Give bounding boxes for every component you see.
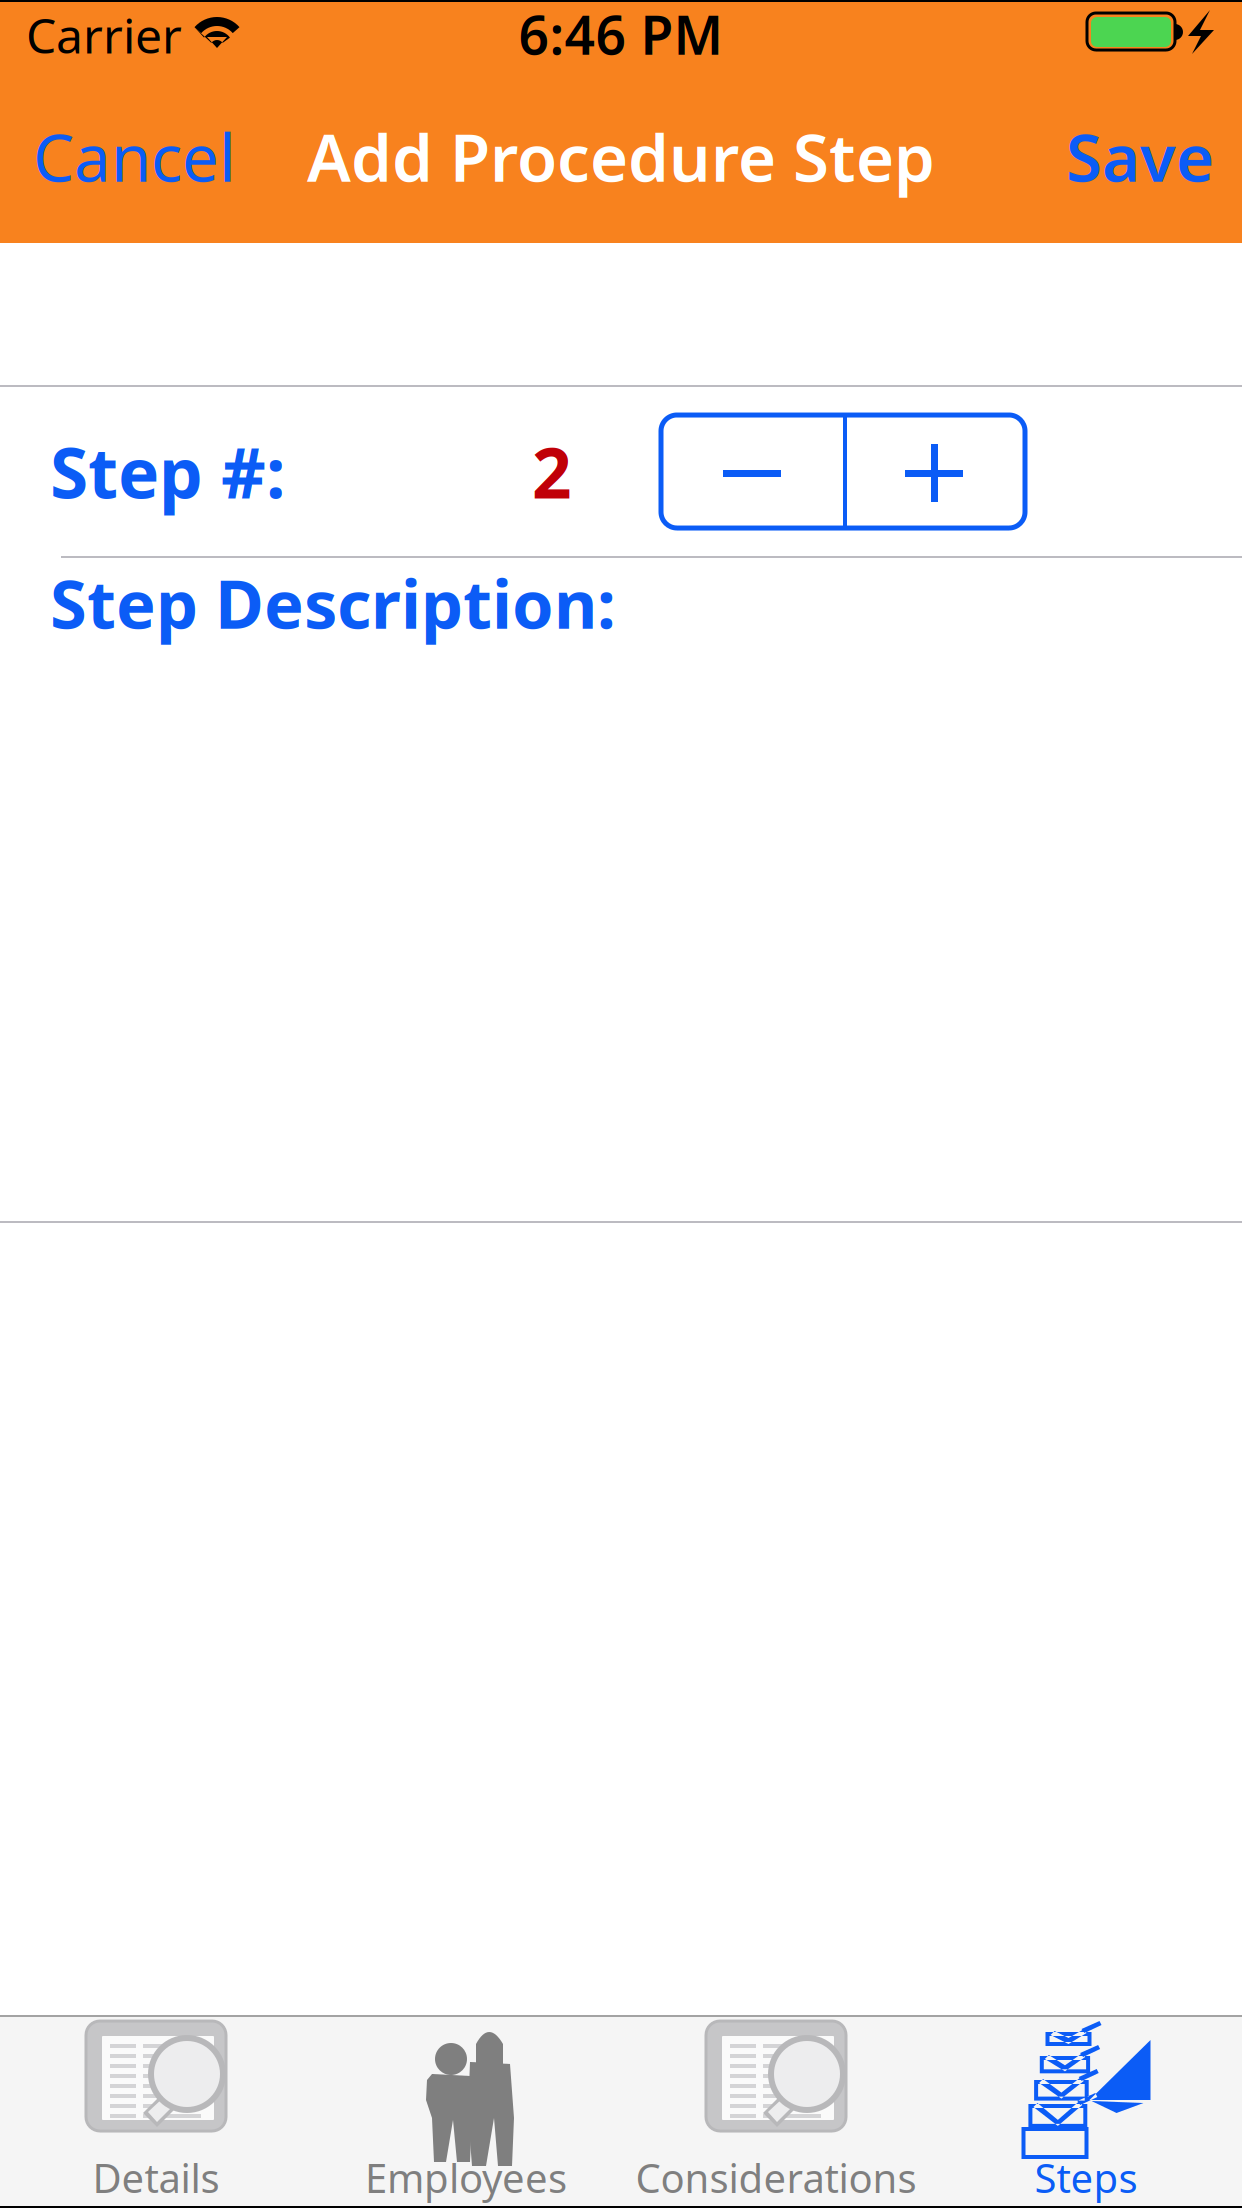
staticText: Step #:: [50, 425, 285, 518]
staticText: Cancel: [33, 113, 236, 200]
staticText: Details: [92, 2151, 219, 2204]
staticText: Employees: [365, 2151, 567, 2204]
button[interactable]: Details: [1, 2015, 311, 2206]
staticText: Steps: [1034, 2151, 1137, 2204]
button[interactable]: Cancel: [21, 91, 248, 211]
staticText: Add Procedure Step: [307, 113, 935, 200]
staticText: Step Description:: [50, 559, 616, 647]
button[interactable]: Considerations: [621, 2015, 931, 2206]
button[interactable]: Steps: [931, 2015, 1241, 2206]
button[interactable]: Employees: [311, 2015, 621, 2206]
button[interactable]: Decrease step number: [661, 415, 843, 528]
staticText: Considerations: [635, 2151, 916, 2204]
staticText: 6:46 PM: [518, 0, 723, 69]
staticText: Save: [1066, 113, 1214, 200]
button[interactable]: Increase step number: [847, 415, 1025, 528]
staticText: Carrier: [26, 3, 182, 67]
staticText: 2: [532, 425, 572, 518]
button[interactable]: Save: [1054, 91, 1226, 211]
